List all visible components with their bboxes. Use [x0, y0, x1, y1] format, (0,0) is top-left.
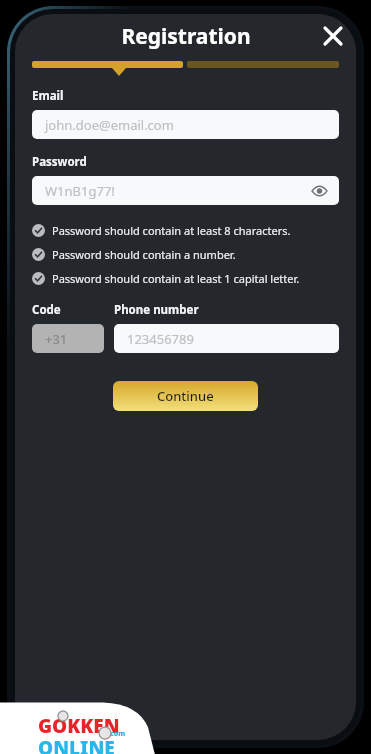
button[interactable]: john.doe@email.com: [32, 110, 339, 139]
staticText: ONLINE: [38, 735, 115, 754]
button[interactable]: Continue: [113, 381, 258, 411]
staticText: Email: [32, 88, 64, 104]
staticText: 123456789: [127, 330, 194, 348]
staticText: Password should contain a number.: [52, 247, 236, 262]
button[interactable]: +31: [32, 324, 104, 353]
staticText: Password should contain at least 1 capit…: [52, 271, 300, 286]
staticText: john.doe@email.com: [45, 116, 174, 134]
button[interactable]: 123456789: [114, 324, 339, 353]
staticText: Phone number: [114, 302, 199, 318]
staticText: Continue: [157, 387, 214, 405]
staticText: Password: [32, 154, 87, 170]
staticText: GOKKEN: [38, 713, 120, 739]
staticText: +31: [45, 330, 68, 348]
staticText: Code: [32, 302, 61, 318]
button[interactable]: Close: [315, 18, 351, 54]
staticText: Registration: [121, 22, 251, 51]
staticText: Password should contain at least 8 chara…: [52, 223, 291, 238]
button[interactable]: W1nB1g77!: [32, 176, 339, 205]
staticText: W1nB1g77!: [45, 182, 115, 200]
button[interactable]: Menu: [308, 18, 346, 56]
other: Show password: [309, 181, 329, 201]
staticText: .com: [108, 729, 126, 739]
